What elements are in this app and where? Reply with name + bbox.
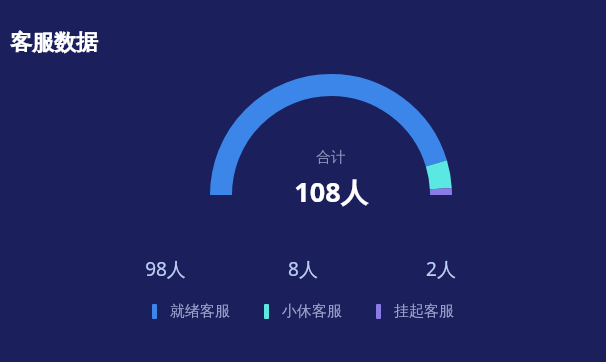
button[interactable]: 挂起客服 bbox=[374, 300, 456, 323]
other: 客服数据仪表盘 bbox=[0, 0, 606, 362]
button[interactable]: 2人 bbox=[406, 256, 476, 282]
staticText: 小休客服 bbox=[282, 302, 342, 321]
staticText: 108人 bbox=[294, 173, 368, 210]
staticText: 2人 bbox=[426, 256, 456, 282]
staticText: 合计 bbox=[316, 148, 346, 167]
staticText: 就绪客服 bbox=[170, 302, 230, 321]
staticText: 挂起客服 bbox=[394, 302, 454, 321]
button[interactable]: 98人 bbox=[130, 256, 200, 282]
staticText: 8人 bbox=[288, 256, 318, 282]
staticText: 客服数据 bbox=[10, 29, 98, 57]
button[interactable]: 8人 bbox=[268, 256, 338, 282]
button[interactable]: 小休客服 bbox=[262, 300, 344, 323]
button[interactable]: 就绪客服 bbox=[150, 300, 232, 323]
staticText: 98人 bbox=[145, 256, 186, 282]
